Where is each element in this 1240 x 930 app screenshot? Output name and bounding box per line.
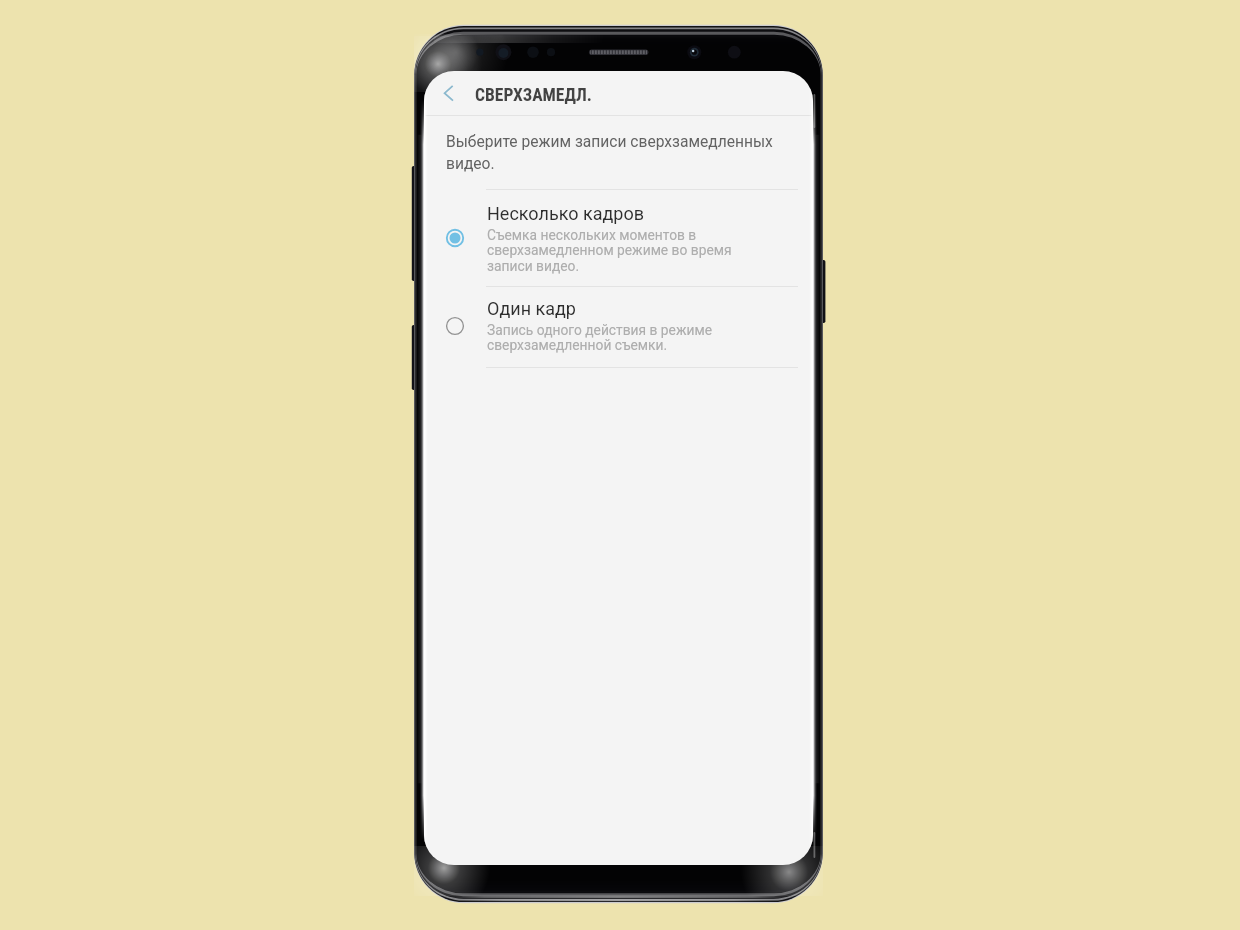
staticText: Один кадр [487, 298, 576, 319]
button[interactable] [424, 189, 813, 239]
button[interactable]: Back [424, 71, 476, 115]
staticText: Запись одного действия в режиме сверхзам… [487, 322, 739, 354]
staticText: СВЕРХЗАМЕДЛ. [475, 85, 592, 106]
staticText: Выберите режим записи сверхзамедленных в… [446, 133, 794, 173]
button[interactable] [424, 286, 813, 367]
staticText: Несколько кадров [487, 203, 644, 224]
staticText: Съемка нескольких моментов в сверхзамедл… [487, 227, 739, 275]
